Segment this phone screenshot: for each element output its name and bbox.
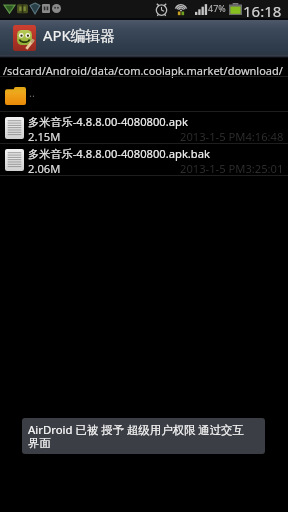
staticText: AirDroid 已被 授予 超级用户权限 通过交互: [28, 422, 244, 438]
staticText: 多米音乐-4.8.8.00-4080800.apk: [28, 114, 188, 129]
button[interactable]: 多米音乐-4.8.8.00-4080800.apk: [0, 112, 288, 144]
staticText: 多米音乐-4.8.8.00-4080800.apk.bak: [28, 146, 210, 161]
staticText: 47%: [208, 2, 226, 14]
button[interactable]: AirDroid 已被 授予 超级用户权限 通过交互: [22, 418, 265, 454]
staticText: 2013-1-5 PM3:25:01: [180, 161, 284, 176]
staticText: 2.06M: [28, 161, 61, 176]
staticText: 2.15M: [28, 129, 61, 144]
staticText: 16:18: [243, 1, 282, 21]
button[interactable]: ..: [0, 77, 288, 112]
staticText: APK编辑器: [43, 25, 115, 45]
staticText: ..: [29, 85, 35, 100]
staticText: 界面: [28, 436, 51, 450]
staticText: /sdcard/Android/data/com.coolapk.market/…: [3, 63, 283, 78]
button[interactable]: 多米音乐-4.8.8.00-4080800.apk.bak: [0, 144, 288, 176]
staticText: 2013-1-5 PM4:16:48: [180, 129, 284, 144]
